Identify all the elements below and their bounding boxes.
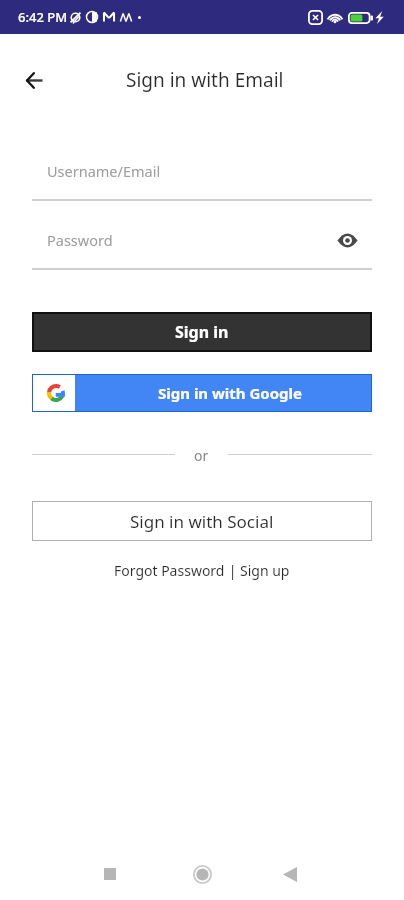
staticText: Sign in with Social bbox=[130, 510, 274, 533]
staticText: Sign in with Email bbox=[126, 67, 284, 93]
button[interactable]: Sign in with Social bbox=[32, 501, 372, 541]
button[interactable]: Sign up bbox=[240, 561, 290, 580]
staticText: Password bbox=[47, 230, 113, 250]
staticText: | bbox=[225, 561, 240, 580]
button[interactable]: Password bbox=[32, 232, 372, 268]
button[interactable]: Recents bbox=[90, 854, 130, 894]
staticText: Username/Email bbox=[47, 161, 161, 181]
button[interactable]: Home bbox=[182, 854, 222, 894]
button[interactable]: Forgot Password bbox=[114, 561, 225, 580]
button[interactable]: Sign in with Google bbox=[33, 375, 371, 411]
staticText: 6:42 PM bbox=[18, 8, 68, 26]
staticText: Sign in with Google bbox=[158, 383, 303, 403]
button[interactable]: Back bbox=[270, 854, 310, 894]
staticText: Sign in bbox=[175, 321, 229, 343]
button[interactable]: Back bbox=[15, 61, 53, 99]
staticText: or bbox=[194, 446, 209, 462]
button[interactable]: Sign in bbox=[34, 314, 370, 350]
button[interactable]: Username/Email bbox=[32, 163, 372, 199]
button[interactable]: Show password bbox=[330, 223, 364, 257]
